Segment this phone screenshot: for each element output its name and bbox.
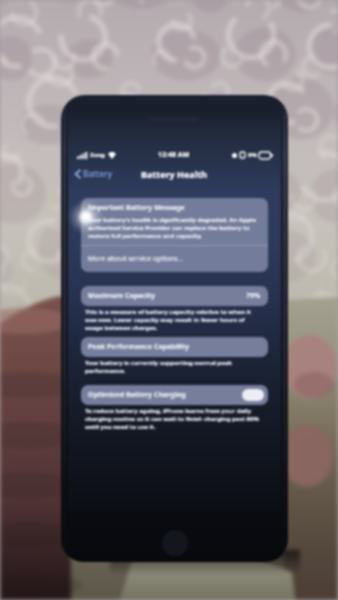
staticText: To reduce battery ageing, iPhone learns …: [85, 407, 264, 431]
staticText: 79%: [246, 291, 261, 301]
staticText: Maximum Capacity: [88, 291, 155, 301]
staticText: Zong: [90, 151, 105, 159]
other: Home: [162, 530, 188, 556]
button[interactable]: Peak Performance Capability: [81, 337, 268, 357]
button[interactable]: More about service options...: [81, 246, 268, 272]
staticText: This is a measure of battery capacity re…: [85, 308, 264, 332]
staticText: Important Battery Message: [88, 203, 185, 213]
button[interactable]: Optimized Battery Charging toggle: [242, 389, 264, 401]
staticText: 9%: [248, 151, 257, 159]
staticText: Your battery's health is significantly d…: [88, 216, 261, 240]
staticText: 12:48 AM: [158, 150, 190, 160]
staticText: Peak Performance Capability: [88, 342, 189, 352]
staticText: Battery Health: [141, 168, 208, 180]
button[interactable]: Maximum Capacity: [81, 286, 268, 306]
staticText: Battery: [83, 168, 113, 180]
button[interactable]: Optimized Battery Charging: [81, 385, 268, 405]
staticText: Your battery is currently supporting nor…: [85, 359, 264, 375]
staticText: Optimized Battery Charging: [88, 390, 186, 400]
button[interactable]: Battery: [75, 168, 113, 180]
staticText: More about service options...: [88, 254, 184, 264]
